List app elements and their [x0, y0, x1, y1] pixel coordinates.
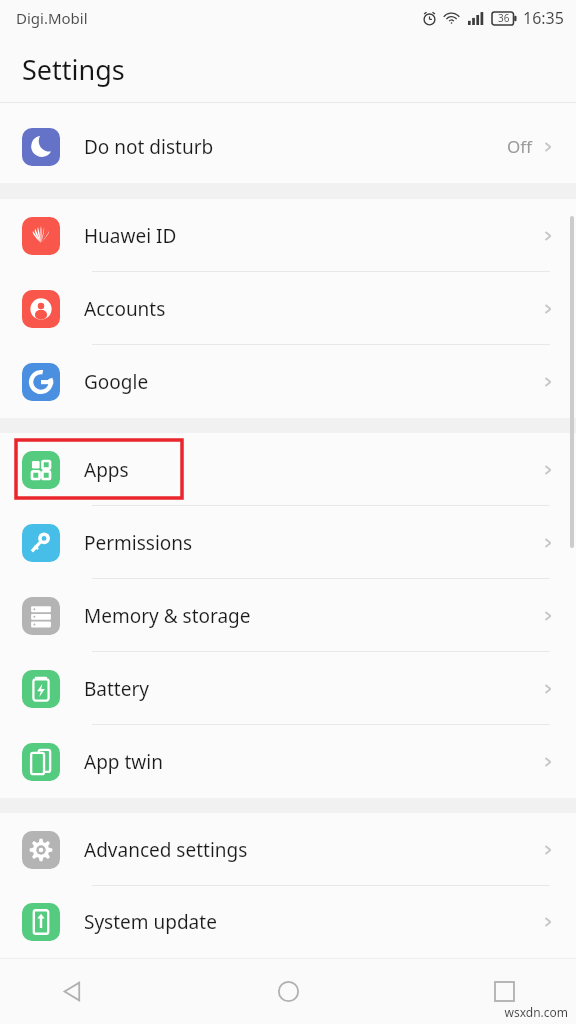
- button[interactable]: Battery: [0, 652, 576, 725]
- staticText: Google: [84, 369, 149, 395]
- button[interactable]: Memory & storage: [0, 579, 576, 652]
- staticText: Apps: [84, 457, 129, 483]
- staticText: Battery: [84, 676, 149, 702]
- button[interactable]: Advanced settings: [0, 813, 576, 886]
- staticText: 36: [498, 11, 510, 25]
- staticText: Advanced settings: [84, 837, 248, 863]
- staticText: Off: [507, 135, 532, 158]
- staticText: Memory & storage: [84, 603, 251, 629]
- staticText: System update: [84, 909, 217, 935]
- button[interactable]: Recent apps: [468, 958, 540, 1024]
- button[interactable]: Huawei ID: [0, 199, 576, 272]
- button[interactable]: Back: [36, 958, 108, 1024]
- button[interactable]: Google: [0, 345, 576, 418]
- button[interactable]: Do not disturb: [0, 110, 576, 183]
- button[interactable]: System update: [0, 886, 576, 958]
- staticText: App twin: [84, 749, 163, 775]
- button[interactable]: Permissions: [0, 506, 576, 579]
- staticText: Accounts: [84, 296, 166, 322]
- button[interactable]: Accounts: [0, 272, 576, 345]
- staticText: Permissions: [84, 530, 193, 556]
- staticText: Do not disturb: [84, 134, 214, 160]
- staticText: wsxdn.com: [504, 1004, 568, 1020]
- staticText: 16:35: [523, 7, 564, 29]
- button[interactable]: Apps: [0, 433, 576, 506]
- staticText: Settings: [22, 51, 125, 88]
- staticText: Huawei ID: [84, 223, 177, 249]
- button[interactable]: App twin: [0, 725, 576, 798]
- staticText: Digi.Mobil: [16, 8, 88, 28]
- button[interactable]: Home: [252, 958, 324, 1024]
